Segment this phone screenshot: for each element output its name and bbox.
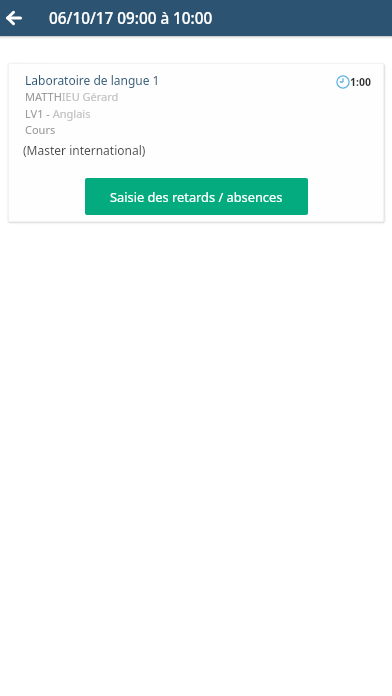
button[interactable]: Saisie des retards / absences — [85, 178, 308, 215]
staticText: Laboratoire de langue 1 — [25, 72, 160, 88]
staticText: Cours — [25, 122, 56, 137]
staticText: LV1 - Anglais — [25, 106, 91, 121]
staticText: (Master international) — [23, 142, 146, 158]
staticText: 06/10/17 09:00 à 10:00 — [49, 8, 213, 29]
staticText: Saisie des retards / absences — [110, 188, 283, 205]
staticText: MATTHIEU Gérard — [25, 89, 119, 104]
button[interactable]: Back — [0, 0, 28, 36]
staticText: 1:00 — [350, 75, 371, 89]
